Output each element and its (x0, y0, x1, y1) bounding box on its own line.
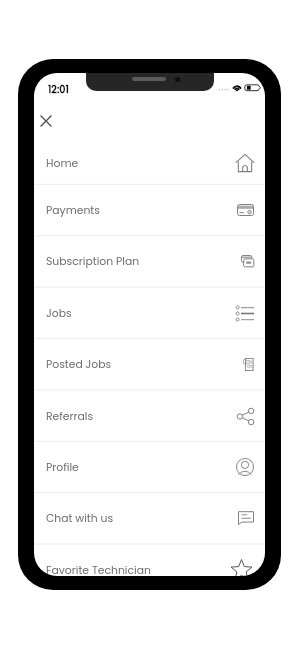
button[interactable]: Payments (34, 184, 265, 235)
staticText: Posted Jobs (46, 357, 112, 372)
button[interactable]: Referrals (34, 390, 265, 441)
staticText: Profile (46, 460, 79, 475)
staticText: Referrals (46, 409, 94, 424)
staticText: Home (46, 156, 79, 171)
button[interactable]: Profile (34, 441, 265, 492)
button[interactable]: Home (34, 137, 265, 188)
button[interactable]: Subscription Plan (34, 235, 265, 286)
button[interactable]: Close (36, 111, 56, 131)
staticText: Chat with us (46, 511, 114, 526)
button[interactable]: Favorite Technician (34, 544, 265, 576)
button[interactable]: Posted Jobs (34, 338, 265, 389)
staticText: Subscription Plan (46, 254, 140, 269)
staticText: Payments (46, 203, 100, 218)
button[interactable]: Chat with us (34, 492, 265, 543)
button[interactable]: Jobs (34, 287, 265, 338)
staticText: Favorite Technician (46, 563, 151, 576)
staticText: Jobs (46, 306, 72, 321)
staticText: 12:01 (48, 83, 69, 96)
